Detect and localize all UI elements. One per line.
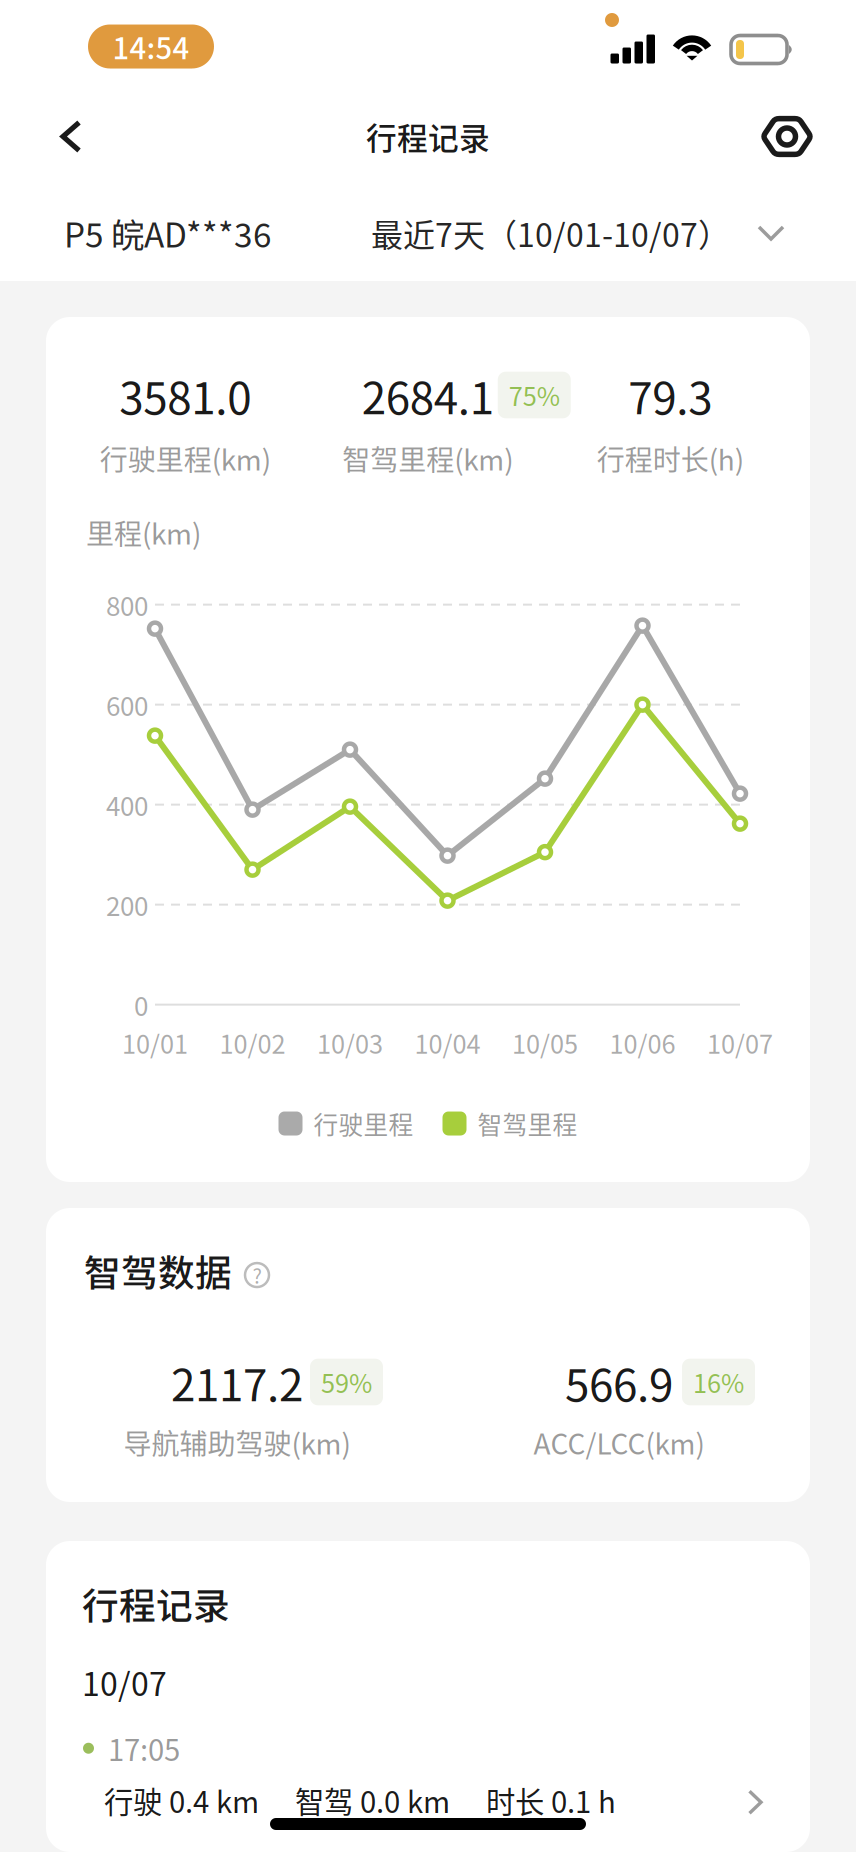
staticText: 3581.0	[119, 363, 251, 427]
staticText: 2117.2	[171, 1350, 303, 1414]
staticText: 行驶里程(km)	[100, 438, 271, 478]
staticText: 10/06	[609, 1024, 675, 1061]
staticText: 75%	[509, 377, 560, 413]
staticText: 0	[134, 986, 148, 1023]
staticText: 智驾里程	[477, 1106, 577, 1141]
staticText: 10/07	[82, 1659, 167, 1705]
button[interactable]: About autonomous driving data	[232, 1253, 270, 1288]
staticText: 400	[106, 786, 148, 823]
staticText: 10/02	[219, 1024, 285, 1061]
staticText: 时长 0.1 h	[486, 1779, 616, 1821]
staticText: 行驶 0.4 km	[104, 1779, 259, 1821]
staticText: 600	[106, 686, 148, 723]
staticText: 10/07	[707, 1024, 773, 1061]
staticText: 200	[106, 886, 148, 923]
button[interactable]: Settings	[732, 88, 856, 184]
staticText: 导航辅助驾驶(km)	[123, 1422, 350, 1462]
button[interactable]: 最近7天（10/01-10/07）	[371, 192, 856, 274]
staticText: 智驾数据	[84, 1244, 232, 1297]
staticText: 16%	[693, 1364, 744, 1400]
staticText: 10/01	[122, 1024, 188, 1061]
staticText: 566.9	[565, 1350, 673, 1414]
staticText: 行程记录	[82, 1577, 230, 1630]
staticText: P5 皖AD***36	[64, 209, 272, 257]
staticText: 10/04	[414, 1024, 480, 1061]
staticText: 59%	[321, 1364, 372, 1400]
staticText: 智驾 0.0 km	[295, 1779, 450, 1821]
staticText: 800	[106, 586, 148, 623]
button[interactable]: P5 皖AD***36	[0, 191, 282, 275]
button[interactable]: 17:05	[46, 1541, 810, 1852]
button[interactable]: Back	[0, 88, 112, 184]
staticText: 17:05	[108, 1727, 180, 1769]
staticText: ?	[252, 1261, 261, 1290]
staticText: 2684.1	[362, 363, 494, 427]
staticText: 智驾里程(km)	[342, 438, 513, 478]
staticText: 行程时长(h)	[597, 438, 744, 478]
staticText: 最近7天（10/01-10/07）	[371, 210, 730, 256]
staticText: 14:54	[112, 25, 189, 68]
staticText: 里程(km)	[86, 512, 201, 552]
staticText: 行程记录	[366, 114, 490, 159]
staticText: 79.3	[628, 363, 712, 427]
staticText: ACC/LCC(km)	[533, 1422, 704, 1462]
staticText: 10/05	[512, 1024, 578, 1061]
staticText: 10/03	[317, 1024, 383, 1061]
staticText: 行驶里程	[313, 1106, 413, 1141]
